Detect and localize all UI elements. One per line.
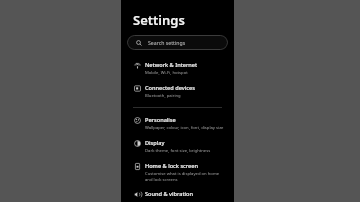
staticText: Customise what is displayed on home and … bbox=[145, 171, 226, 182]
staticText: Mobile, Wi-Fi, hotspot bbox=[145, 70, 188, 76]
staticText: Sound & vibration bbox=[145, 190, 193, 198]
staticText: Bluetooth, pairing bbox=[145, 93, 181, 99]
staticText: Settings bbox=[133, 11, 185, 29]
staticText: Display bbox=[145, 139, 165, 147]
button[interactable]: Personalise bbox=[121, 112, 234, 135]
staticText: Personalise bbox=[145, 116, 176, 124]
button[interactable]: Display bbox=[121, 135, 234, 158]
staticText: Connected devices bbox=[145, 84, 195, 92]
button[interactable]: Home & lock screen bbox=[121, 158, 234, 186]
staticText: Network & Internet bbox=[145, 61, 198, 69]
staticText: Dark theme, font size, brightness bbox=[145, 148, 211, 154]
button[interactable]: Network & Internet bbox=[121, 57, 234, 80]
button[interactable]: Sound & vibration bbox=[121, 186, 234, 202]
button[interactable]: Search settings bbox=[127, 35, 228, 50]
staticText: Wallpaper, colour, icon, font, display s… bbox=[145, 125, 224, 131]
staticText: Search settings bbox=[148, 39, 186, 46]
button[interactable]: Connected devices bbox=[121, 80, 234, 103]
staticText: Home & lock screen bbox=[145, 162, 199, 170]
